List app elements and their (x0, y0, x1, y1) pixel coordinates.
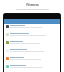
button[interactable] (4, 64, 60, 72)
staticText: Fitness (26, 2, 39, 7)
button[interactable] (4, 56, 60, 64)
button[interactable] (4, 24, 60, 32)
staticText: Track your daily workouts easily (16, 8, 49, 11)
button[interactable] (4, 32, 60, 40)
button[interactable] (4, 48, 60, 56)
button[interactable] (4, 40, 60, 48)
